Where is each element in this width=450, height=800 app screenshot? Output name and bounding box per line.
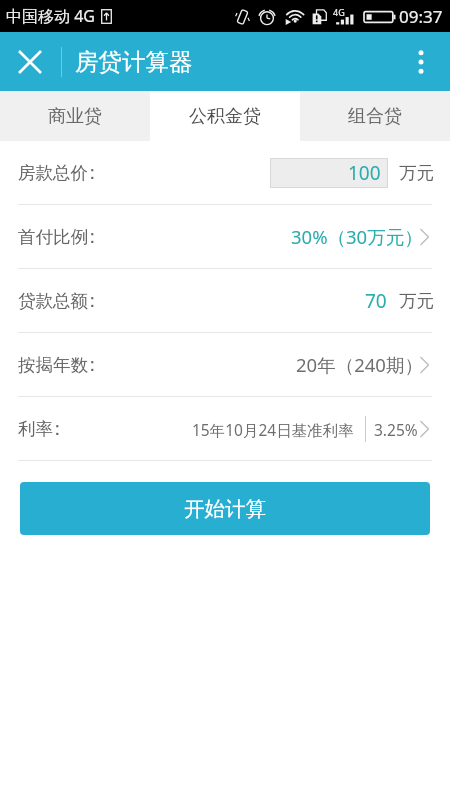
- staticText: 4G: [333, 6, 345, 18]
- staticText: 房贷计算器: [75, 47, 193, 77]
- staticText: 公积金贷: [189, 105, 261, 128]
- staticText: 组合贷: [348, 105, 402, 128]
- button[interactable]: Close: [0, 32, 59, 91]
- staticText: 20年（240期）: [296, 352, 423, 377]
- button[interactable]: 商业贷: [0, 91, 150, 141]
- button[interactable]: 利率: [0, 397, 450, 460]
- staticText: ：: [48, 417, 67, 441]
- staticText: 30%（30万元）: [291, 224, 423, 249]
- button[interactable]: 房款总价: [0, 141, 450, 204]
- staticText: 开始计算: [184, 496, 266, 522]
- button[interactable]: 开始计算: [20, 482, 430, 535]
- staticText: 房款总价: [18, 162, 88, 184]
- button[interactable]: 公积金贷: [150, 91, 300, 141]
- staticText: ：: [83, 353, 102, 377]
- staticText: 商业贷: [48, 105, 102, 128]
- staticText: 3.25%: [374, 419, 418, 440]
- button[interactable]: 首付比例: [0, 205, 450, 268]
- button[interactable]: 按揭年数: [0, 333, 450, 396]
- staticText: 万元: [399, 162, 434, 184]
- staticText: 按揭年数: [18, 354, 88, 376]
- staticText: 中国移动 4G: [6, 5, 95, 27]
- staticText: ：: [83, 161, 102, 185]
- staticText: 70: [365, 288, 387, 314]
- staticText: 利率: [18, 418, 53, 440]
- staticText: 100: [348, 160, 381, 186]
- button[interactable]: More options: [391, 32, 450, 91]
- staticText: ：: [83, 225, 102, 249]
- staticText: 贷款总额: [18, 290, 88, 312]
- staticText: ：: [83, 289, 102, 313]
- staticText: 万元: [399, 290, 434, 312]
- staticText: 09:37: [399, 5, 443, 28]
- staticText: 15年10月24日基准利率: [192, 419, 354, 440]
- button[interactable]: 组合贷: [300, 91, 450, 141]
- staticText: 首付比例: [18, 226, 88, 248]
